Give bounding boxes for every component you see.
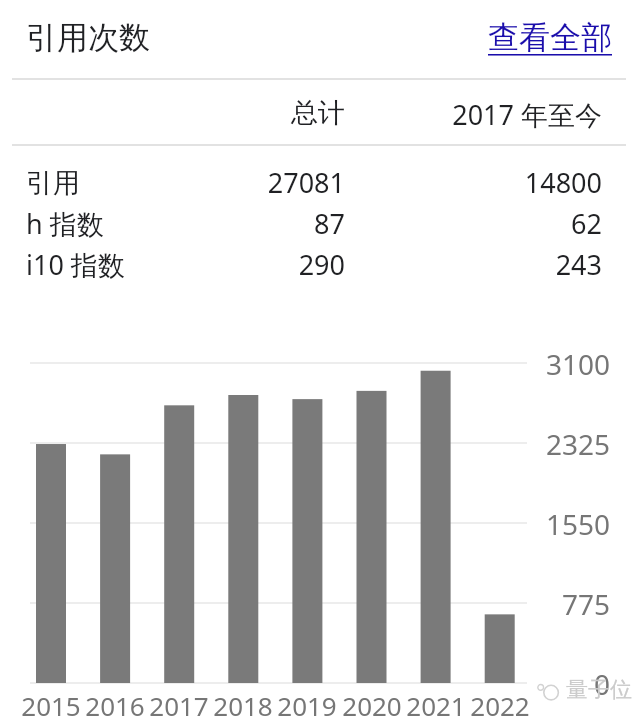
staticText: 查看全部 xyxy=(488,18,612,57)
staticText: i10 指数 xyxy=(26,246,185,283)
staticText: 2022 xyxy=(468,688,532,722)
button[interactable]: i10 指数 xyxy=(12,244,626,285)
staticText: 14800 xyxy=(345,164,602,201)
staticText: 总计 xyxy=(185,96,345,130)
button[interactable]: 查看全部 xyxy=(460,8,612,66)
button[interactable]: 引用 xyxy=(12,162,626,203)
staticText: 2021 xyxy=(404,688,468,722)
staticText: 0 xyxy=(528,665,610,703)
staticText: 2017 xyxy=(147,688,211,722)
staticText: 87 xyxy=(185,205,345,242)
staticText: 2016 xyxy=(83,688,147,722)
button[interactable]: 引用次数 xyxy=(14,8,244,66)
staticText: 2015 xyxy=(19,688,83,722)
staticText: h 指数 xyxy=(26,205,185,242)
staticText: 2017 年至今 xyxy=(382,96,602,133)
staticText: 2018 xyxy=(211,688,275,722)
staticText: 243 xyxy=(345,246,602,283)
staticText: 引用次数 xyxy=(26,18,150,57)
staticText: 27081 xyxy=(185,164,345,201)
staticText: 2325 xyxy=(528,425,610,463)
staticText: 290 xyxy=(185,246,345,283)
staticText: 1550 xyxy=(528,505,610,543)
staticText: 3100 xyxy=(528,345,610,383)
other: 量子位 watermark xyxy=(536,676,632,704)
staticText: 62 xyxy=(345,205,602,242)
staticText: 2020 xyxy=(340,688,404,722)
staticText: 775 xyxy=(528,585,610,623)
button[interactable]: h 指数 xyxy=(12,203,626,244)
staticText: 量子位 xyxy=(566,676,632,704)
staticText: 引用 xyxy=(26,166,185,200)
staticText: 2019 xyxy=(275,688,339,722)
